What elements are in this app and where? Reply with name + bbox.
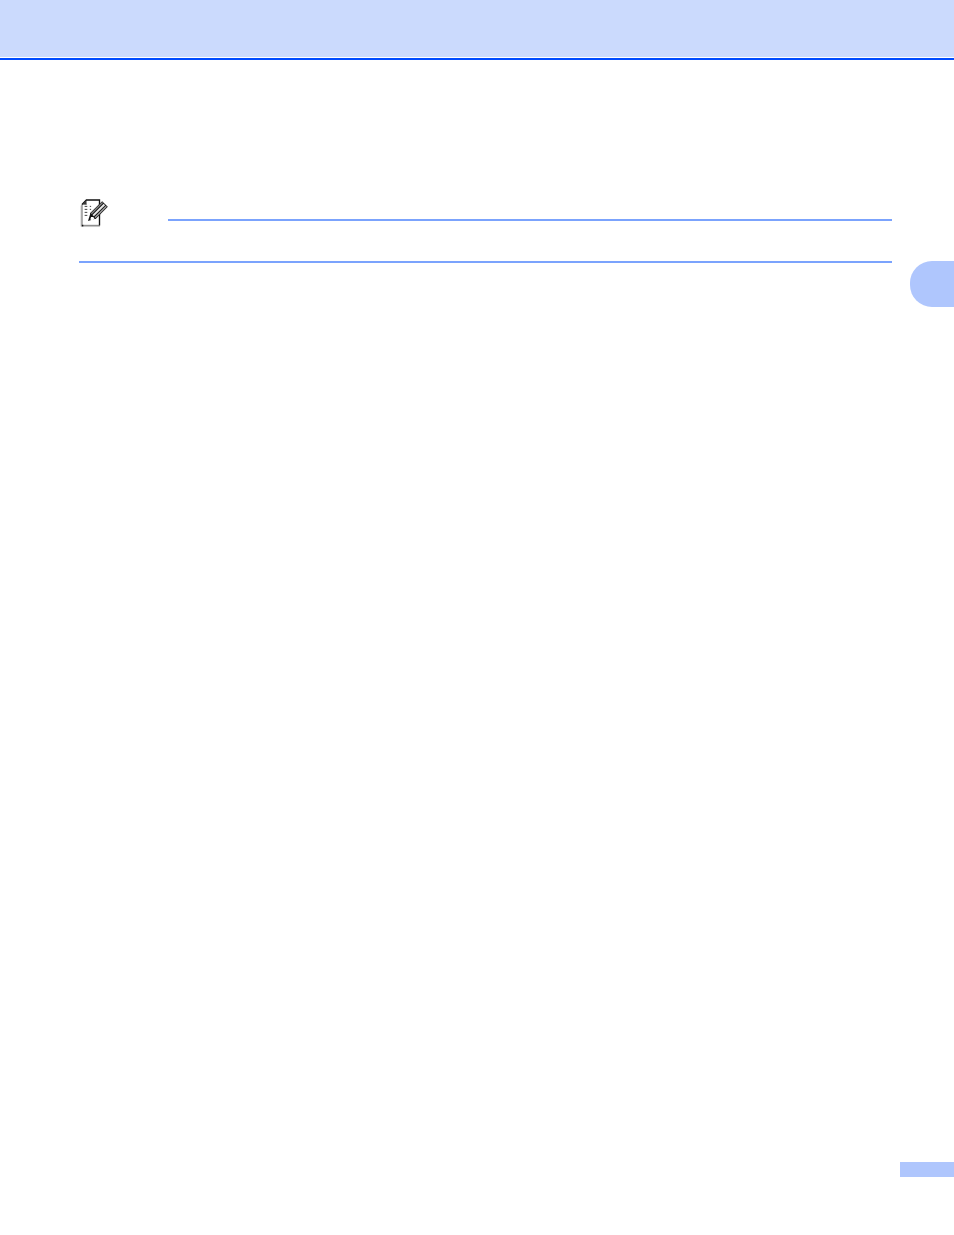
button[interactable]: Chapter bookmark tab (910, 261, 954, 307)
button[interactable]: Note (78, 196, 112, 230)
